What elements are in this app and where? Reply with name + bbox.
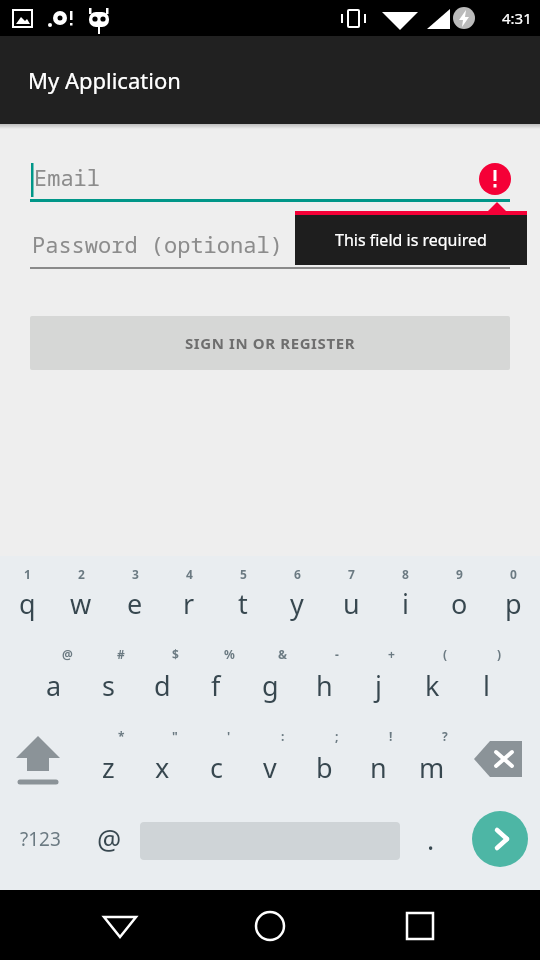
staticText: * — [118, 728, 125, 744]
button[interactable]: $ — [135, 642, 189, 716]
staticText: ) — [497, 646, 502, 662]
staticText: z — [102, 749, 115, 786]
staticText: 3 — [132, 566, 139, 582]
staticText: w — [70, 585, 92, 622]
button[interactable]: . — [406, 808, 456, 870]
staticText: e — [127, 585, 143, 622]
button[interactable]: ? — [405, 726, 459, 800]
staticText: 6 — [294, 566, 301, 582]
staticText: u — [343, 585, 360, 622]
staticText: g — [262, 667, 279, 704]
button[interactable]: Enter — [472, 811, 528, 867]
staticText: i — [402, 585, 409, 622]
staticText: ' — [227, 728, 231, 744]
staticText: s — [102, 667, 115, 704]
staticText: This field is required — [335, 229, 487, 251]
staticText: My Application — [28, 65, 181, 95]
staticText: x — [155, 749, 170, 786]
staticText: + — [388, 646, 395, 662]
button[interactable]: : — [243, 726, 297, 800]
button[interactable]: Recent apps — [390, 895, 450, 955]
staticText: b — [316, 749, 333, 786]
staticText: $ — [172, 646, 179, 662]
button[interactable]: Back — [90, 895, 150, 955]
staticText: SIGN IN OR REGISTER — [185, 333, 356, 353]
button[interactable]: * — [81, 726, 135, 800]
staticText: m — [419, 749, 445, 786]
button[interactable]: ) — [459, 642, 513, 716]
button[interactable]: 8 — [378, 560, 432, 634]
button[interactable]: Email — [30, 150, 510, 204]
staticText: l — [483, 667, 490, 704]
button[interactable]: Home — [240, 895, 300, 955]
button[interactable]: % — [189, 642, 243, 716]
staticText: " — [172, 728, 178, 744]
staticText: - — [335, 646, 339, 662]
staticText: 8 — [402, 566, 409, 582]
button[interactable]: ; — [297, 726, 351, 800]
staticText: j — [375, 667, 382, 704]
button[interactable]: 6 — [270, 560, 324, 634]
staticText: p — [505, 585, 522, 622]
staticText: Email — [34, 162, 101, 192]
button[interactable]: 1 — [0, 560, 54, 634]
button[interactable]: & — [243, 642, 297, 716]
staticText: v — [263, 749, 277, 786]
staticText: ( — [443, 646, 448, 662]
button[interactable]: 9 — [432, 560, 486, 634]
button[interactable]: @ — [82, 808, 136, 870]
staticText: c — [210, 749, 223, 786]
staticText: q — [19, 585, 36, 622]
staticText: 4:31 — [502, 8, 532, 28]
staticText: 0 — [510, 566, 517, 582]
button[interactable]: + — [351, 642, 405, 716]
staticText: 7 — [348, 566, 355, 582]
button[interactable]: 3 — [108, 560, 162, 634]
button[interactable]: ?123 — [8, 808, 72, 870]
staticText: # — [117, 646, 125, 662]
staticText: t — [238, 585, 248, 622]
button[interactable]: ( — [405, 642, 459, 716]
staticText: h — [316, 667, 333, 704]
button[interactable]: 5 — [216, 560, 270, 634]
staticText: 2 — [78, 566, 85, 582]
button[interactable]: Error: field is required — [479, 163, 511, 195]
staticText: k — [425, 667, 440, 704]
staticText: o — [451, 585, 468, 622]
staticText: 4 — [186, 566, 193, 582]
button[interactable]: 0 — [486, 560, 540, 634]
button[interactable]: " — [135, 726, 189, 800]
button[interactable]: 7 — [324, 560, 378, 634]
staticText: & — [278, 646, 288, 662]
staticText: f — [211, 667, 221, 704]
button[interactable]: ! — [351, 726, 405, 800]
staticText: . — [427, 821, 435, 858]
staticText: ! — [389, 728, 393, 744]
staticText: r — [183, 585, 195, 622]
button[interactable]: Password (optional) — [30, 220, 510, 268]
button[interactable]: 2 — [54, 560, 108, 634]
button[interactable]: SIGN IN OR REGISTER — [30, 316, 510, 370]
staticText: ; — [335, 728, 339, 744]
staticText: 1 — [24, 566, 31, 582]
button[interactable]: Shift — [4, 726, 72, 796]
staticText: @ — [62, 646, 73, 662]
staticText: y — [290, 585, 304, 622]
button[interactable]: Backspace — [472, 738, 528, 780]
button[interactable]: - — [297, 642, 351, 716]
button[interactable]: 4 — [162, 560, 216, 634]
staticText: d — [154, 667, 171, 704]
staticText: ? — [442, 728, 448, 744]
staticText: 5 — [240, 566, 247, 582]
staticText: @ — [97, 821, 122, 858]
staticText: % — [224, 646, 235, 662]
staticText: a — [46, 667, 62, 704]
staticText: 9 — [456, 566, 463, 582]
button[interactable]: # — [81, 642, 135, 716]
button[interactable]: ' — [189, 726, 243, 800]
staticText: : — [281, 728, 285, 744]
staticText: Password (optional) — [32, 229, 283, 259]
button[interactable]: @ — [27, 642, 81, 716]
staticText: ?123 — [20, 826, 61, 852]
